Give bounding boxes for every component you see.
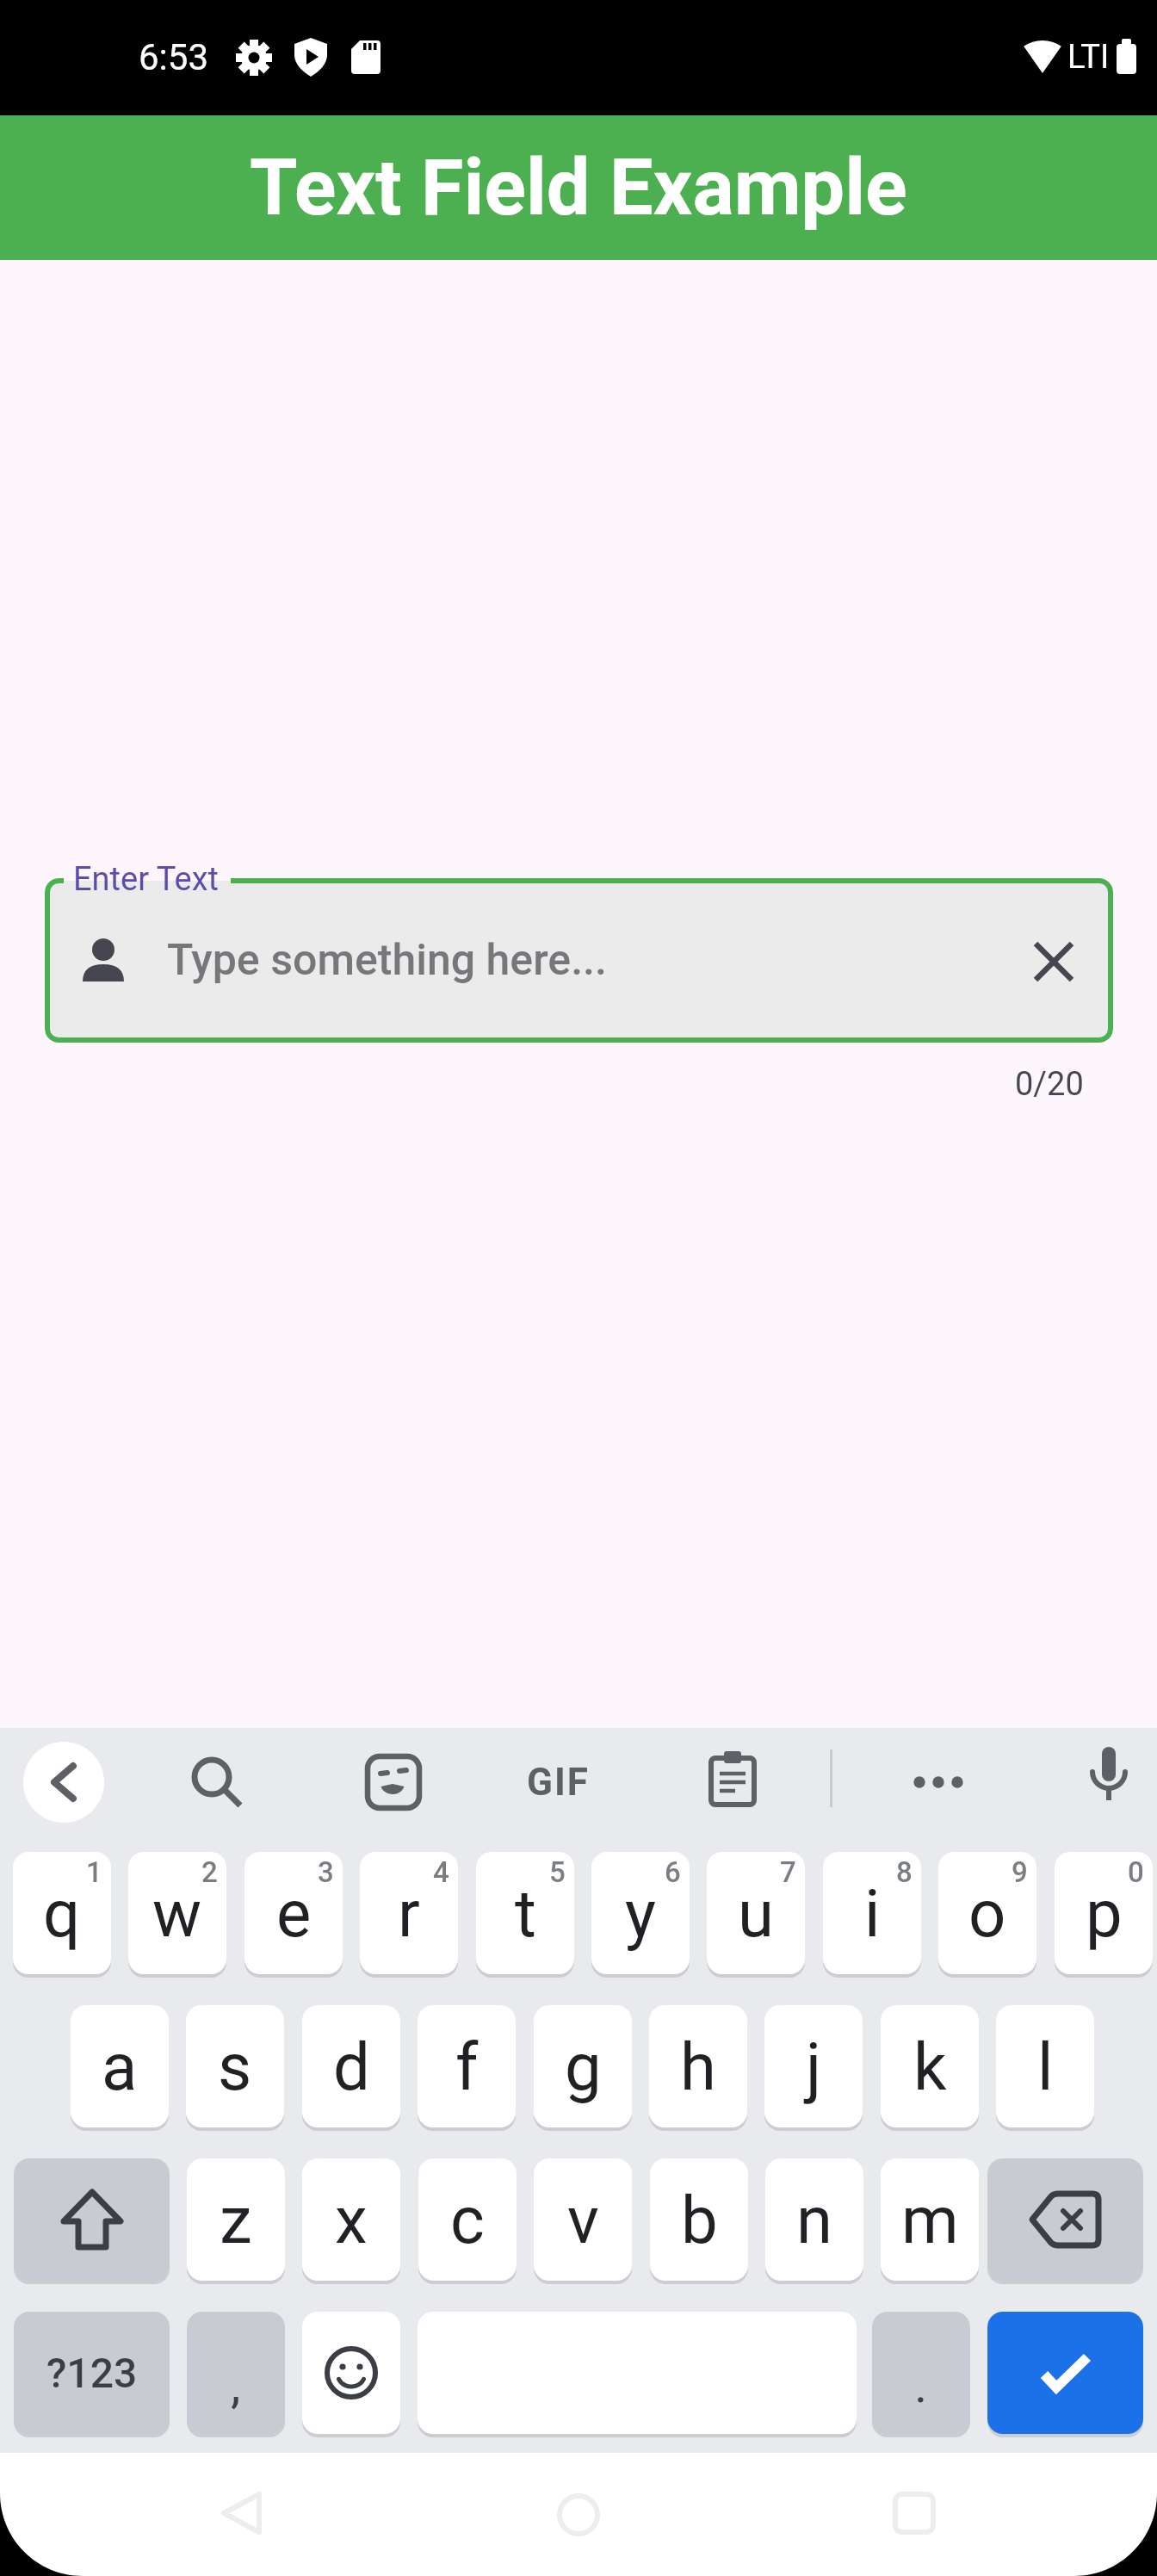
- button[interactable]: h: [649, 2005, 747, 2127]
- button[interactable]: v: [534, 2158, 632, 2281]
- staticText: 0: [1128, 1855, 1144, 1889]
- staticText: GIF: [527, 1760, 590, 1805]
- button[interactable]: [302, 2312, 400, 2434]
- button[interactable]: ,: [187, 2312, 285, 2434]
- staticText: 4: [433, 1855, 449, 1889]
- button[interactable]: p: [1055, 1852, 1153, 1974]
- button[interactable]: [700, 1746, 765, 1811]
- staticText: f: [455, 2028, 479, 2105]
- staticText: e: [276, 1875, 312, 1952]
- button[interactable]: [14, 2158, 170, 2281]
- staticText: t: [515, 1875, 536, 1952]
- button[interactable]: [207, 2479, 275, 2548]
- staticText: r: [398, 1875, 420, 1952]
- button[interactable]: r: [360, 1852, 458, 1974]
- button[interactable]: x: [302, 2158, 400, 2281]
- button[interactable]: m: [881, 2158, 979, 2281]
- staticText: u: [738, 1875, 774, 1952]
- button[interactable]: l: [996, 2005, 1094, 2127]
- button[interactable]: [900, 1749, 976, 1815]
- button[interactable]: q: [13, 1852, 111, 1974]
- staticText: k: [913, 2028, 947, 2105]
- button[interactable]: i: [823, 1852, 921, 1974]
- button[interactable]: j: [764, 2005, 863, 2127]
- staticText: 9: [1012, 1855, 1028, 1889]
- button[interactable]: n: [765, 2158, 863, 2281]
- staticText: g: [565, 2028, 602, 2105]
- button[interactable]: w: [128, 1852, 226, 1974]
- staticText: m: [901, 2182, 959, 2258]
- staticText: z: [220, 2182, 252, 2258]
- button[interactable]: e: [244, 1852, 343, 1974]
- staticText: 3: [318, 1855, 334, 1889]
- staticText: 6: [665, 1855, 681, 1889]
- button[interactable]: [987, 2158, 1143, 2281]
- button[interactable]: b: [650, 2158, 748, 2281]
- staticText: Text Field Example: [250, 143, 907, 233]
- staticText: ,: [231, 2356, 241, 2414]
- staticText: 6:53: [139, 36, 208, 78]
- staticText: o: [968, 1875, 1006, 1952]
- button[interactable]: [1076, 1743, 1142, 1809]
- button[interactable]: ?123: [14, 2312, 170, 2434]
- staticText: p: [1086, 1875, 1123, 1952]
- staticText: q: [43, 1875, 81, 1952]
- staticText: 0/20: [1015, 1065, 1084, 1104]
- button[interactable]: g: [534, 2005, 632, 2127]
- button[interactable]: [987, 2312, 1143, 2434]
- staticText: 5: [549, 1855, 566, 1889]
- staticText: l: [1037, 2028, 1054, 2105]
- staticText: 7: [780, 1855, 796, 1889]
- staticText: Enter Text: [73, 860, 219, 899]
- button[interactable]: [184, 1749, 250, 1815]
- staticText: x: [335, 2182, 368, 2258]
- button[interactable]: [45, 878, 1113, 1043]
- button[interactable]: .: [872, 2312, 970, 2434]
- staticText: w: [152, 1875, 202, 1952]
- staticText: .: [914, 2356, 928, 2414]
- staticText: v: [567, 2182, 599, 2258]
- staticText: LTI: [1067, 38, 1110, 77]
- button[interactable]: y: [591, 1852, 690, 1974]
- button[interactable]: o: [938, 1852, 1036, 1974]
- button[interactable]: u: [707, 1852, 805, 1974]
- button[interactable]: z: [187, 2158, 285, 2281]
- staticText: 2: [201, 1855, 218, 1889]
- staticText: a: [102, 2028, 138, 2105]
- staticText: s: [218, 2028, 252, 2105]
- staticText: h: [680, 2028, 716, 2105]
- staticText: 8: [896, 1855, 913, 1889]
- button[interactable]: c: [418, 2158, 517, 2281]
- button[interactable]: [880, 2479, 949, 2548]
- button[interactable]: f: [418, 2005, 516, 2127]
- button[interactable]: s: [186, 2005, 284, 2127]
- button[interactable]: a: [71, 2005, 169, 2127]
- staticText: d: [333, 2028, 370, 2105]
- staticText: 1: [86, 1855, 102, 1889]
- staticText: ?123: [46, 2349, 138, 2397]
- button[interactable]: [1018, 926, 1090, 998]
- staticText: i: [864, 1875, 881, 1952]
- staticText: b: [681, 2182, 718, 2258]
- button[interactable]: t: [476, 1852, 574, 1974]
- staticText: Type something here...: [167, 935, 608, 986]
- staticText: n: [796, 2182, 832, 2258]
- button[interactable]: GIF: [517, 1752, 599, 1812]
- button[interactable]: [544, 2480, 613, 2549]
- button[interactable]: [361, 1749, 426, 1815]
- staticText: j: [806, 2028, 822, 2105]
- button[interactable]: d: [302, 2005, 400, 2127]
- button[interactable]: k: [881, 2005, 979, 2127]
- staticText: c: [450, 2182, 485, 2258]
- button[interactable]: [23, 1742, 104, 1823]
- staticText: y: [625, 1875, 656, 1952]
